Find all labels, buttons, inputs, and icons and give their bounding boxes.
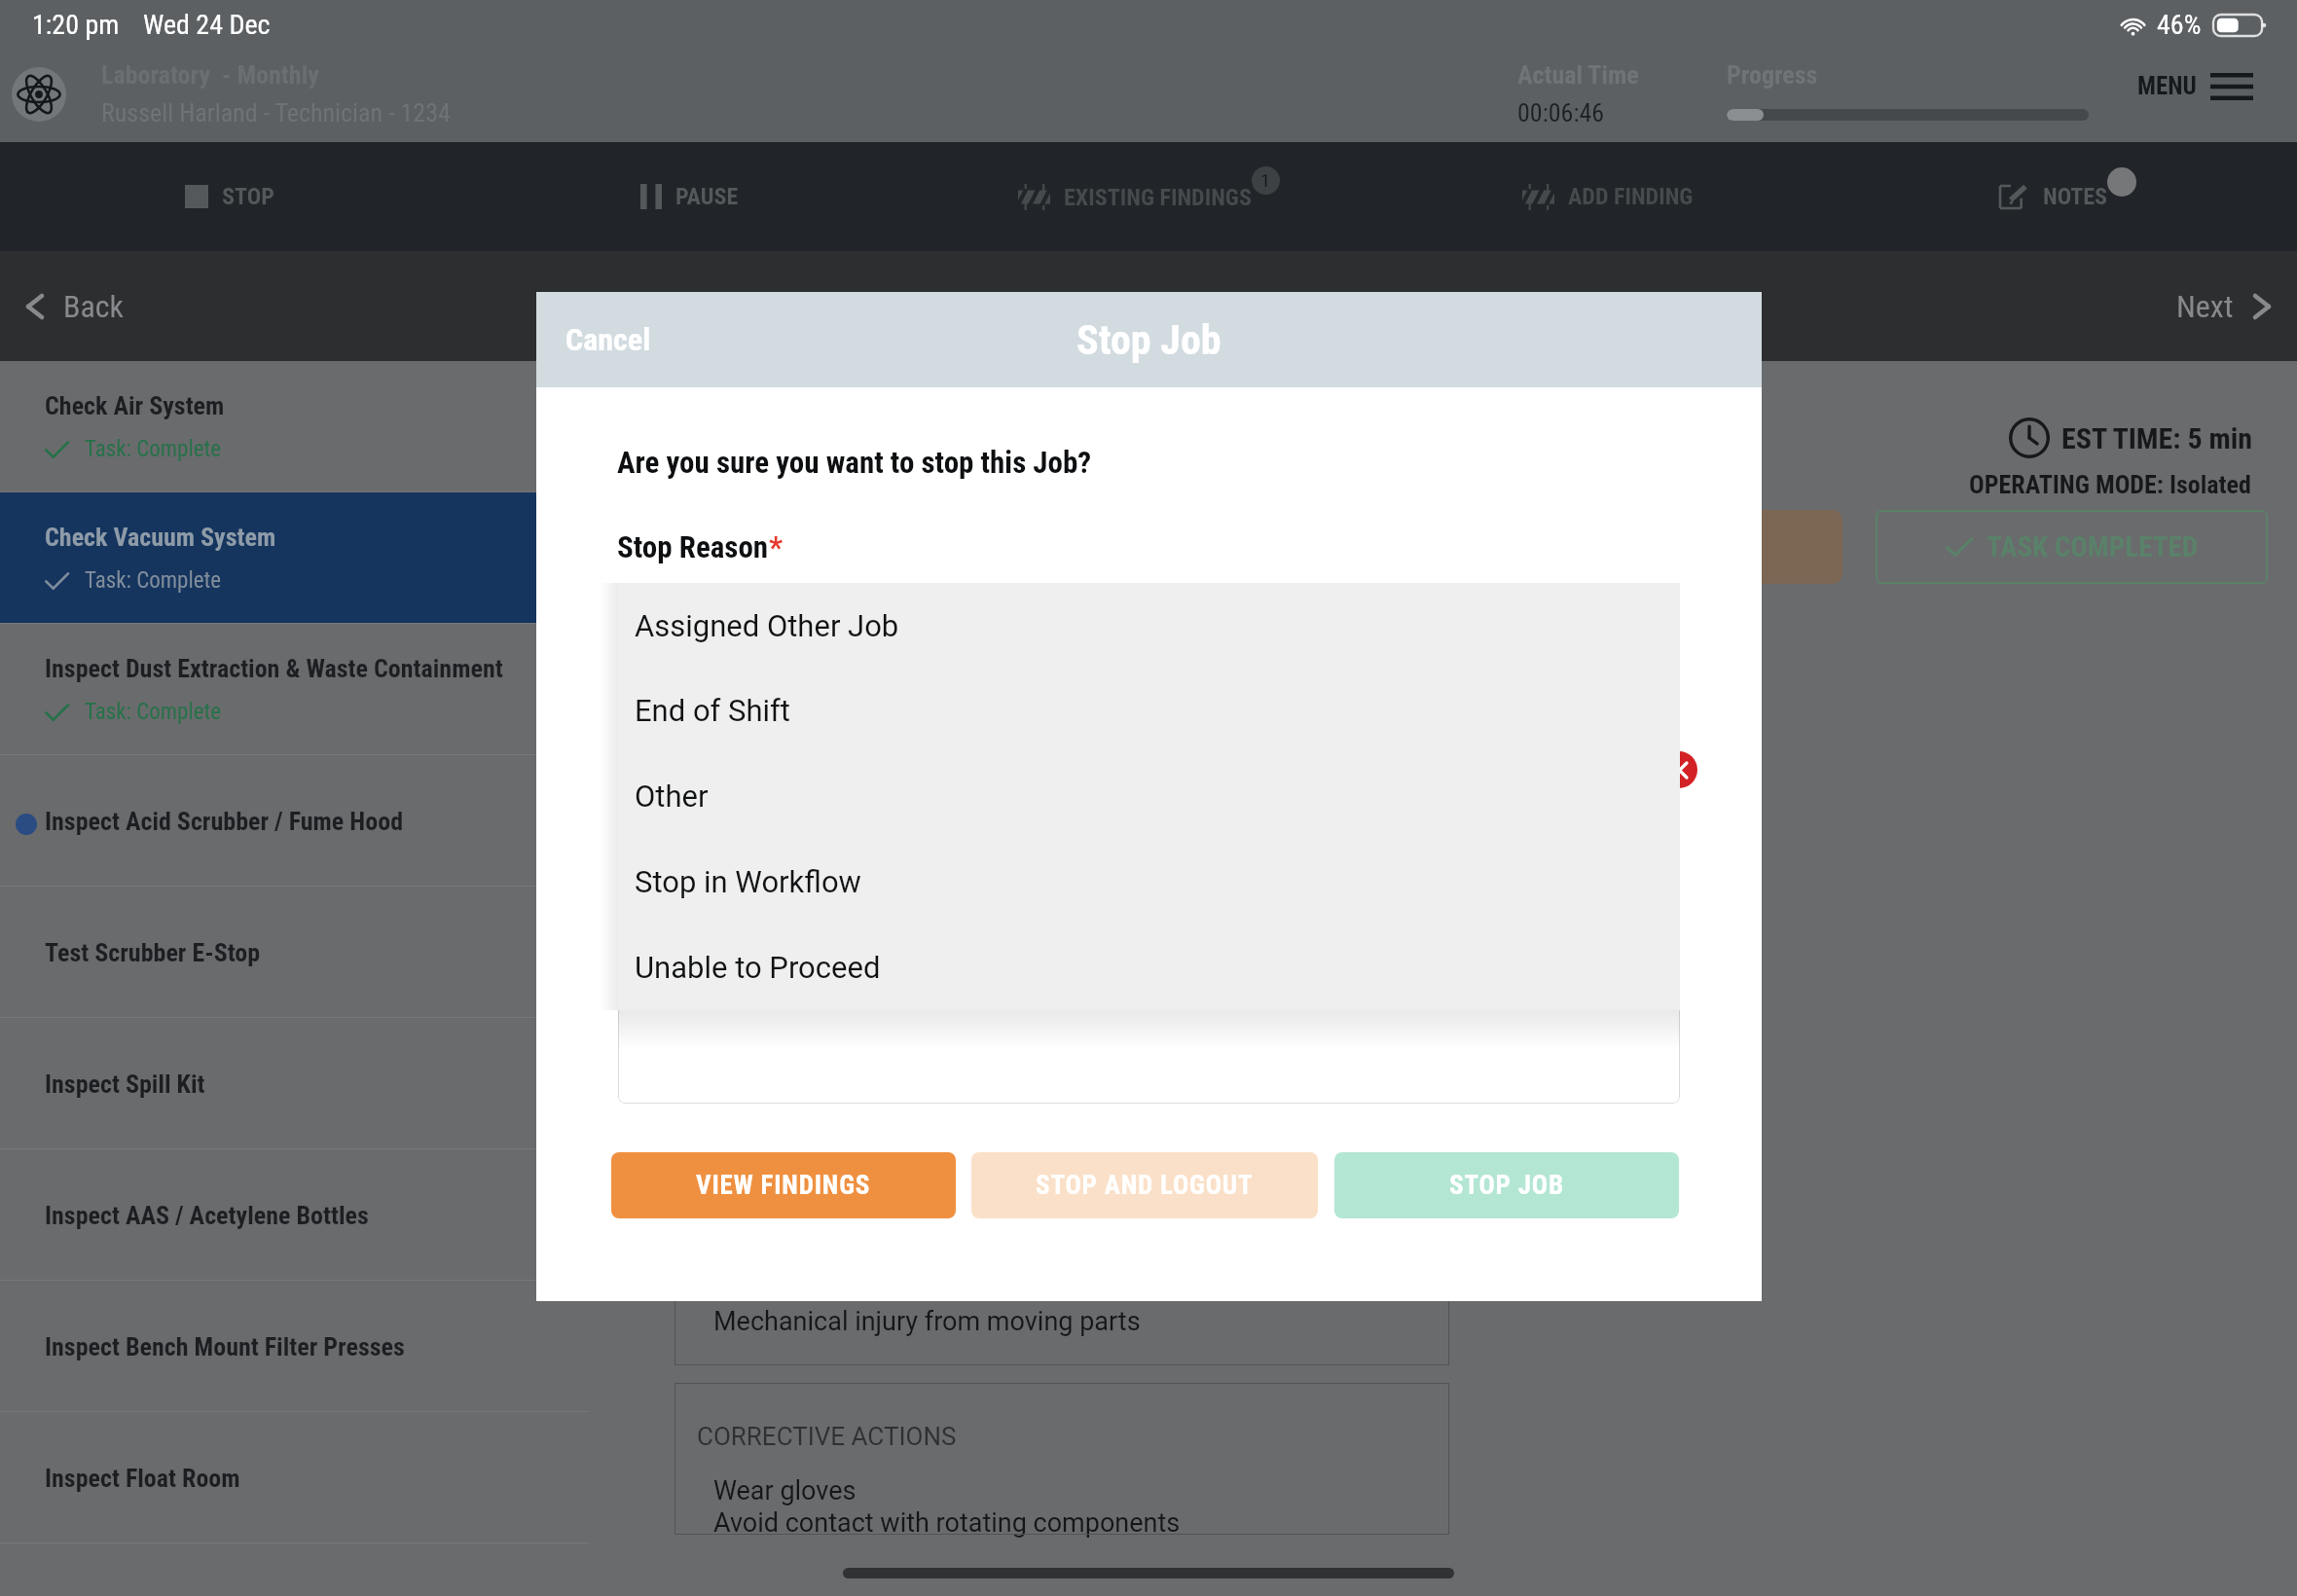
staticText: Check Vacuum System xyxy=(45,523,276,552)
staticText: Task: Complete xyxy=(85,436,222,462)
staticText: ADD FINDING xyxy=(1568,183,1694,210)
staticText: 1:20 pm xyxy=(32,9,120,41)
staticText: OPERATING MODE: Isolated xyxy=(1969,470,2251,499)
staticText: Inspect Dust Extraction & Waste Containm… xyxy=(45,654,503,683)
button[interactable]: VIEW FINDINGS xyxy=(611,1152,956,1218)
button[interactable]: Unable to Proceed xyxy=(618,925,1680,1010)
button[interactable]: Assigned Other Job xyxy=(618,583,1680,668)
staticText: Russell Harland - Technician - 1234 xyxy=(101,98,451,127)
staticText: Stop in Workflow xyxy=(635,864,861,899)
staticText: Inspect AAS / Acetylene Bottles xyxy=(45,1201,369,1230)
button[interactable]: PAUSE xyxy=(459,142,919,251)
staticText: STOP xyxy=(222,183,274,210)
button[interactable]: Cancel xyxy=(536,292,676,387)
button[interactable]: Test Scrubber E-Stop xyxy=(0,887,589,1018)
button[interactable]: STOP JOB xyxy=(1334,1152,1679,1218)
staticText: Are you sure you want to stop this Job? xyxy=(617,445,1092,480)
staticText: Cancel xyxy=(565,321,651,358)
staticText: Wed 24 Dec xyxy=(143,9,271,41)
button[interactable]: End of Shift xyxy=(618,668,1680,753)
staticText: Inspect Acid Scrubber / Fume Hood xyxy=(45,807,404,836)
button[interactable]: Stop in Workflow xyxy=(618,839,1680,925)
staticText: 00:06:46 xyxy=(1517,98,1605,127)
staticText: Inspect Bench Mount Filter Presses xyxy=(45,1332,405,1361)
staticText: Progress xyxy=(1727,60,1818,90)
staticText: Task: Complete xyxy=(85,567,222,594)
button[interactable]: Inspect Dust Extraction & Waste Containm… xyxy=(0,624,589,755)
button[interactable]: ADD FINDING xyxy=(1378,142,1838,251)
button[interactable]: Primary action xyxy=(1562,510,1842,584)
button[interactable]: Inspect Float Room xyxy=(0,1412,589,1543)
staticText: MENU xyxy=(2137,72,2197,100)
staticText: 1 xyxy=(1260,170,1271,191)
staticText: Next xyxy=(2176,288,2234,325)
staticText: Unable to Proceed xyxy=(635,950,881,985)
staticText: Other xyxy=(635,779,709,814)
staticText: 46% xyxy=(2157,9,2202,41)
staticText: Stop Reason xyxy=(617,529,769,564)
staticText: STOP AND LOGOUT xyxy=(1036,1170,1254,1201)
button[interactable]: Other xyxy=(618,753,1680,839)
staticText: Assigned Other Job xyxy=(635,608,899,643)
staticText: Inspect Float Room xyxy=(45,1464,240,1493)
button[interactable]: STOP xyxy=(0,142,459,251)
button[interactable]: EXISTING FINDINGS xyxy=(919,142,1378,251)
button[interactable]: Back xyxy=(27,251,143,361)
staticText: Task: Complete xyxy=(85,699,222,725)
staticText: EST TIME: 5 min xyxy=(2061,421,2253,455)
button[interactable]: STOP AND LOGOUT xyxy=(971,1152,1318,1218)
staticText: Mechanical injury from moving parts xyxy=(713,1306,1141,1337)
staticText: NOTES xyxy=(2043,183,2107,210)
staticText: End of Shift xyxy=(635,693,790,728)
staticText: Back xyxy=(63,288,124,325)
staticText: * xyxy=(769,529,784,564)
button[interactable]: Inspect Spill Kit xyxy=(0,1018,589,1149)
staticText: TASK COMPLETED xyxy=(1987,530,2199,563)
staticText: Actual Time xyxy=(1517,60,1639,90)
button[interactable]: NOTES xyxy=(1838,142,2297,251)
staticText: CORRECTIVE ACTIONS xyxy=(697,1422,957,1451)
button[interactable]: Next xyxy=(2157,251,2270,361)
staticText: VIEW FINDINGS xyxy=(696,1170,871,1201)
button[interactable]: Check Vacuum System xyxy=(0,492,589,624)
staticText: Laboratory - Monthly xyxy=(101,60,319,90)
staticText: PAUSE xyxy=(675,183,739,210)
staticText: EXISTING FINDINGS xyxy=(1064,184,1252,211)
staticText: STOP JOB xyxy=(1449,1170,1564,1201)
button[interactable]: Check Air System xyxy=(0,361,589,492)
button[interactable]: Inspect AAS / Acetylene Bottles xyxy=(0,1149,589,1281)
staticText: Check Air System xyxy=(45,391,225,420)
staticText: Test Scrubber E-Stop xyxy=(45,938,261,967)
staticText: Wear gloves xyxy=(713,1475,857,1506)
button[interactable]: TASK COMPLETED xyxy=(1876,510,2268,584)
staticText: Stop Job xyxy=(1076,316,1221,364)
button[interactable]: Clear selection xyxy=(1660,751,1697,788)
button[interactable]: Inspect Bench Mount Filter Presses xyxy=(0,1281,589,1412)
button[interactable]: Inspect Acid Scrubber / Fume Hood xyxy=(0,755,589,887)
staticText: Avoid contact with rotating components xyxy=(713,1507,1181,1539)
staticText: Inspect Spill Kit xyxy=(45,1070,205,1099)
button[interactable]: Menu xyxy=(2128,58,2263,114)
